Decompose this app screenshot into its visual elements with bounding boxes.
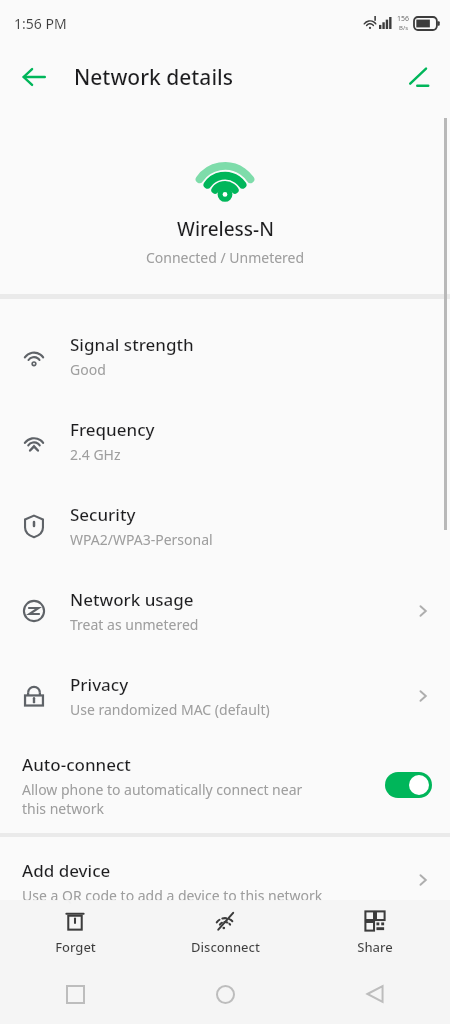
staticText: Use randomized MAC (default) (70, 700, 270, 719)
button[interactable]: Auto-connect toggle (385, 772, 432, 798)
staticText: Share (357, 938, 393, 956)
button[interactable]: Signal strength (0, 315, 450, 397)
staticText: Good (70, 360, 106, 379)
staticText: Wireless-N (177, 216, 274, 242)
staticText: Use a QR code to add a device to this ne… (22, 886, 323, 905)
staticText: B/s (399, 24, 409, 32)
staticText: Treat as unmetered (70, 615, 199, 634)
staticText: Network usage (70, 588, 194, 611)
button[interactable]: Network usage (0, 570, 450, 652)
staticText: Auto-connect (22, 753, 131, 776)
button[interactable]: Home (150, 985, 300, 1004)
staticText: Disconnect (191, 938, 260, 956)
button[interactable]: Recents (0, 986, 150, 1003)
staticText: Add device (22, 859, 111, 882)
button[interactable]: Disconnect (150, 903, 300, 962)
button[interactable]: Privacy (0, 655, 450, 737)
button[interactable]: Back (300, 985, 450, 1003)
staticText: Signal strength (70, 333, 194, 356)
button[interactable]: Add device (0, 845, 450, 915)
staticText: Allow phone to automatically connect nea… (22, 780, 320, 818)
staticText: 156 (397, 14, 410, 24)
staticText: Privacy (70, 673, 129, 696)
staticText: Security (70, 503, 136, 526)
staticText: Network details (74, 63, 233, 92)
staticText: 2.4 GHz (70, 445, 121, 464)
staticText: WPA2/WPA3-Personal (70, 530, 213, 549)
button[interactable]: Forget (0, 903, 150, 962)
button[interactable]: Back (10, 53, 58, 101)
staticText: Forget (55, 938, 96, 956)
button[interactable]: Security (0, 485, 450, 567)
button[interactable]: Frequency (0, 400, 450, 482)
staticText: Connected / Unmetered (146, 248, 305, 267)
button[interactable]: Share (300, 903, 450, 962)
staticText: 1:56 PM (14, 14, 67, 33)
button[interactable]: Auto-connect (0, 740, 450, 830)
button[interactable]: Edit (396, 54, 442, 100)
staticText: Frequency (70, 418, 155, 441)
